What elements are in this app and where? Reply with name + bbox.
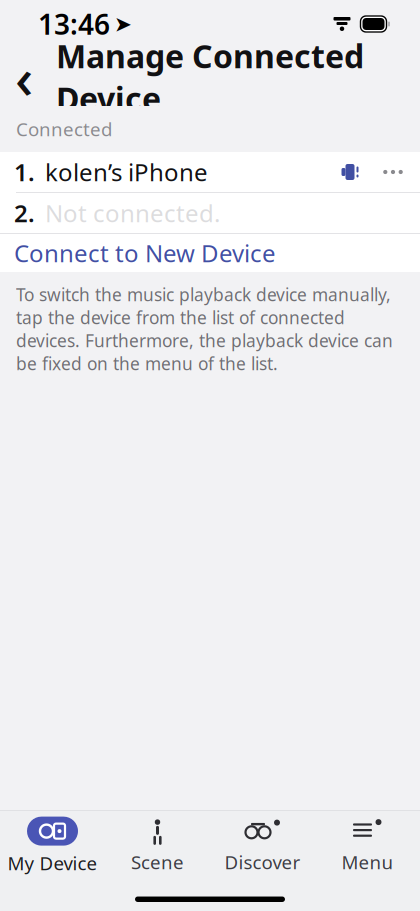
staticText: Manage Connected Device bbox=[56, 34, 364, 119]
button[interactable]: My Device bbox=[0, 817, 105, 875]
staticText: 13:46 bbox=[38, 5, 110, 43]
staticText: Discover bbox=[224, 850, 300, 874]
staticText: Menu bbox=[341, 850, 393, 874]
staticText: Scene bbox=[131, 850, 184, 874]
staticText: To switch the music playback device manu… bbox=[16, 283, 393, 375]
button[interactable]: Menu bbox=[315, 817, 420, 875]
staticText: Connected bbox=[16, 117, 112, 141]
button[interactable]: 2. bbox=[0, 193, 420, 233]
staticText: ➤ bbox=[114, 12, 132, 36]
staticText: 2. bbox=[14, 197, 35, 229]
button[interactable]: Scene bbox=[105, 817, 210, 875]
button[interactable]: Back bbox=[2, 53, 46, 101]
staticText: 1. bbox=[14, 156, 35, 188]
staticText: My Device bbox=[7, 851, 97, 875]
button[interactable]: 1. bbox=[0, 152, 420, 192]
staticText: Not connected. bbox=[45, 197, 220, 229]
staticText: kolen’s iPhone bbox=[45, 156, 208, 188]
staticText: Connect to New Device bbox=[14, 237, 276, 269]
staticText: ‹ bbox=[15, 40, 33, 114]
button[interactable]: Connect to New Device bbox=[0, 234, 420, 272]
button[interactable]: Discover bbox=[210, 817, 315, 875]
